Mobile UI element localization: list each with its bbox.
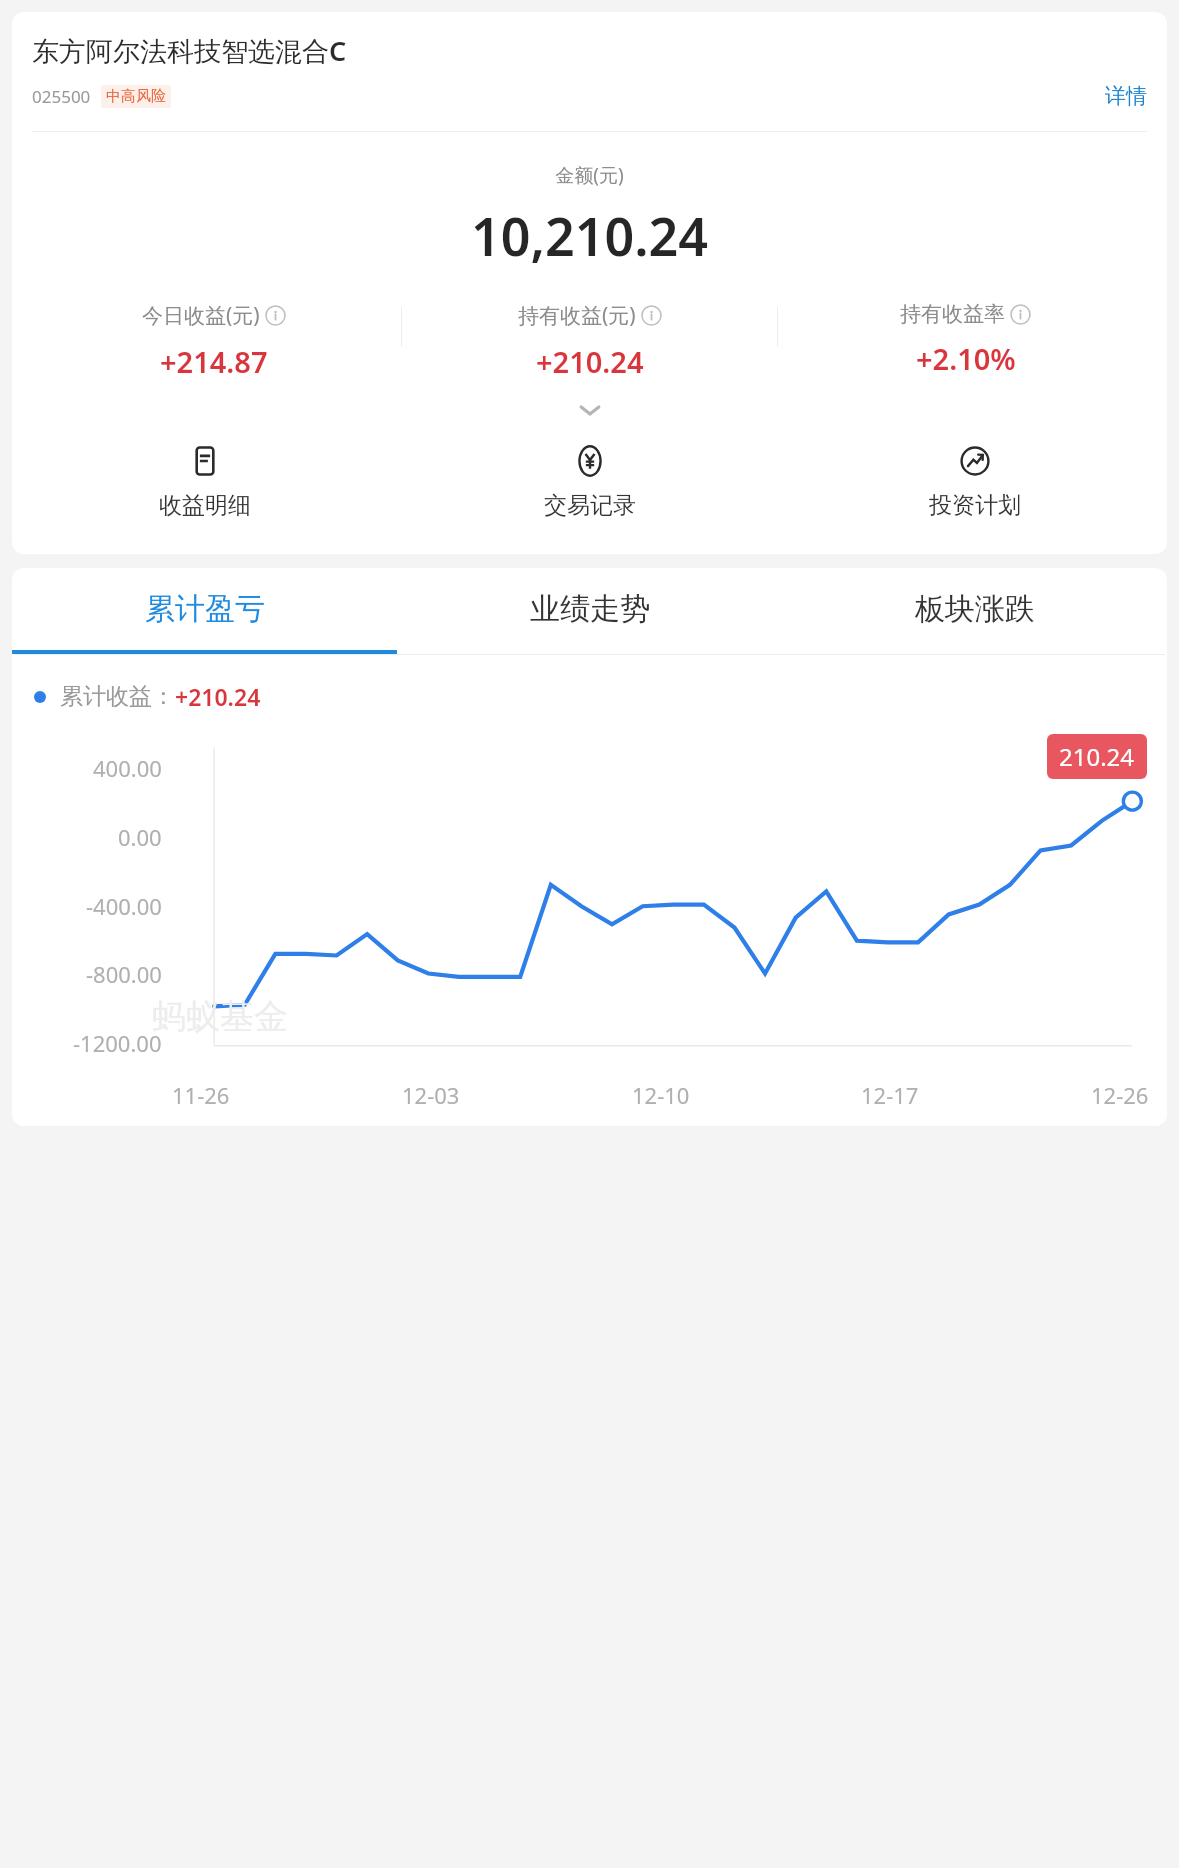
button[interactable]: 交易记录 bbox=[397, 445, 782, 520]
staticText: 中高风险 bbox=[106, 87, 166, 106]
staticText: 210.24 bbox=[1059, 740, 1135, 773]
button[interactable]: 收益明细 bbox=[12, 445, 397, 520]
staticText: 持有收益率 bbox=[900, 301, 1005, 327]
staticText: 12-10 bbox=[632, 1080, 690, 1110]
button[interactable]: 持有收益(元) bbox=[402, 301, 777, 381]
staticText: 收益明细 bbox=[159, 491, 251, 520]
button[interactable]: 展开 bbox=[12, 397, 1167, 423]
staticText: 持有收益(元) bbox=[518, 301, 636, 330]
staticText: 400.00 bbox=[93, 753, 162, 783]
staticText: 交易记录 bbox=[544, 491, 636, 520]
staticText: 蚂蚁基金 bbox=[152, 995, 288, 1038]
staticText: 12-03 bbox=[402, 1080, 460, 1110]
button[interactable]: 投资计划 bbox=[782, 445, 1167, 520]
button[interactable]: 板块涨跌 bbox=[782, 590, 1167, 654]
staticText: 业绩走势 bbox=[530, 590, 650, 628]
staticText: -400.00 bbox=[86, 891, 162, 921]
staticText: 金额(元) bbox=[12, 162, 1167, 188]
staticText: 详情 bbox=[1105, 83, 1147, 109]
button[interactable]: 详情 bbox=[1105, 83, 1147, 109]
button[interactable]: 累计盈亏 bbox=[12, 590, 397, 654]
staticText: 累计盈亏 bbox=[145, 590, 265, 628]
button[interactable]: 业绩走势 bbox=[397, 590, 782, 654]
staticText: 今日收益(元) bbox=[142, 301, 260, 330]
staticText: 025500 bbox=[32, 85, 91, 108]
staticText: -800.00 bbox=[86, 959, 162, 989]
staticText: 板块涨跌 bbox=[915, 590, 1035, 628]
staticText: +210.24 bbox=[175, 681, 261, 712]
staticText: 12-17 bbox=[861, 1080, 919, 1110]
staticText: 投资计划 bbox=[929, 491, 1021, 520]
staticText: +2.10% bbox=[916, 339, 1016, 378]
staticText: 东方阿尔法科技智选混合C bbox=[32, 32, 347, 69]
staticText: 累计收益： bbox=[60, 682, 175, 711]
button[interactable]: 持有收益率 bbox=[778, 301, 1153, 378]
staticText: -1200.00 bbox=[73, 1028, 162, 1058]
staticText: +214.87 bbox=[160, 342, 268, 381]
button[interactable]: 今日收益(元) bbox=[26, 301, 401, 381]
staticText: 10,210.24 bbox=[12, 200, 1167, 271]
staticText: +210.24 bbox=[536, 342, 644, 381]
staticText: 12-26 bbox=[1091, 1080, 1149, 1110]
staticText: 0.00 bbox=[118, 822, 162, 852]
staticText: 11-26 bbox=[172, 1080, 230, 1110]
